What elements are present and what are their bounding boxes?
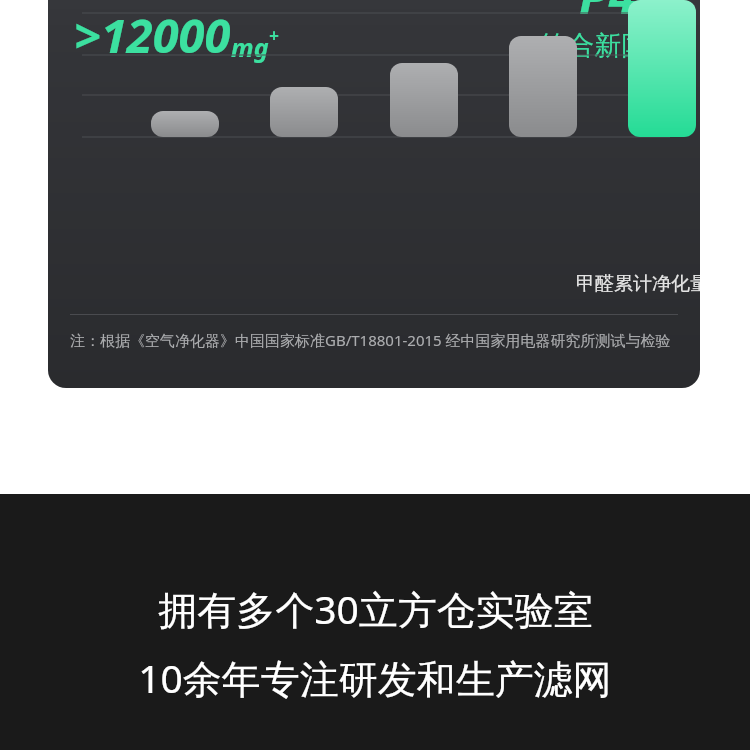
staticText: mg (231, 30, 269, 64)
staticText: P4 (579, 0, 636, 29)
staticText: 10余年专注研发和生产滤网 (138, 651, 612, 704)
staticText: 符合新国标 (540, 29, 675, 63)
button[interactable]: 颗粒物CCM (48, 0, 700, 388)
staticText: 注：根据《空气净化器》中国国家标准GB/T18801-2015 经中国家用电器研… (70, 330, 671, 350)
staticText: 甲醛累计净化量 (576, 272, 700, 296)
staticText: >12000 (74, 3, 231, 67)
staticText: 拥有多个30立方仓实验室 (158, 582, 593, 635)
staticText: + (269, 24, 279, 47)
